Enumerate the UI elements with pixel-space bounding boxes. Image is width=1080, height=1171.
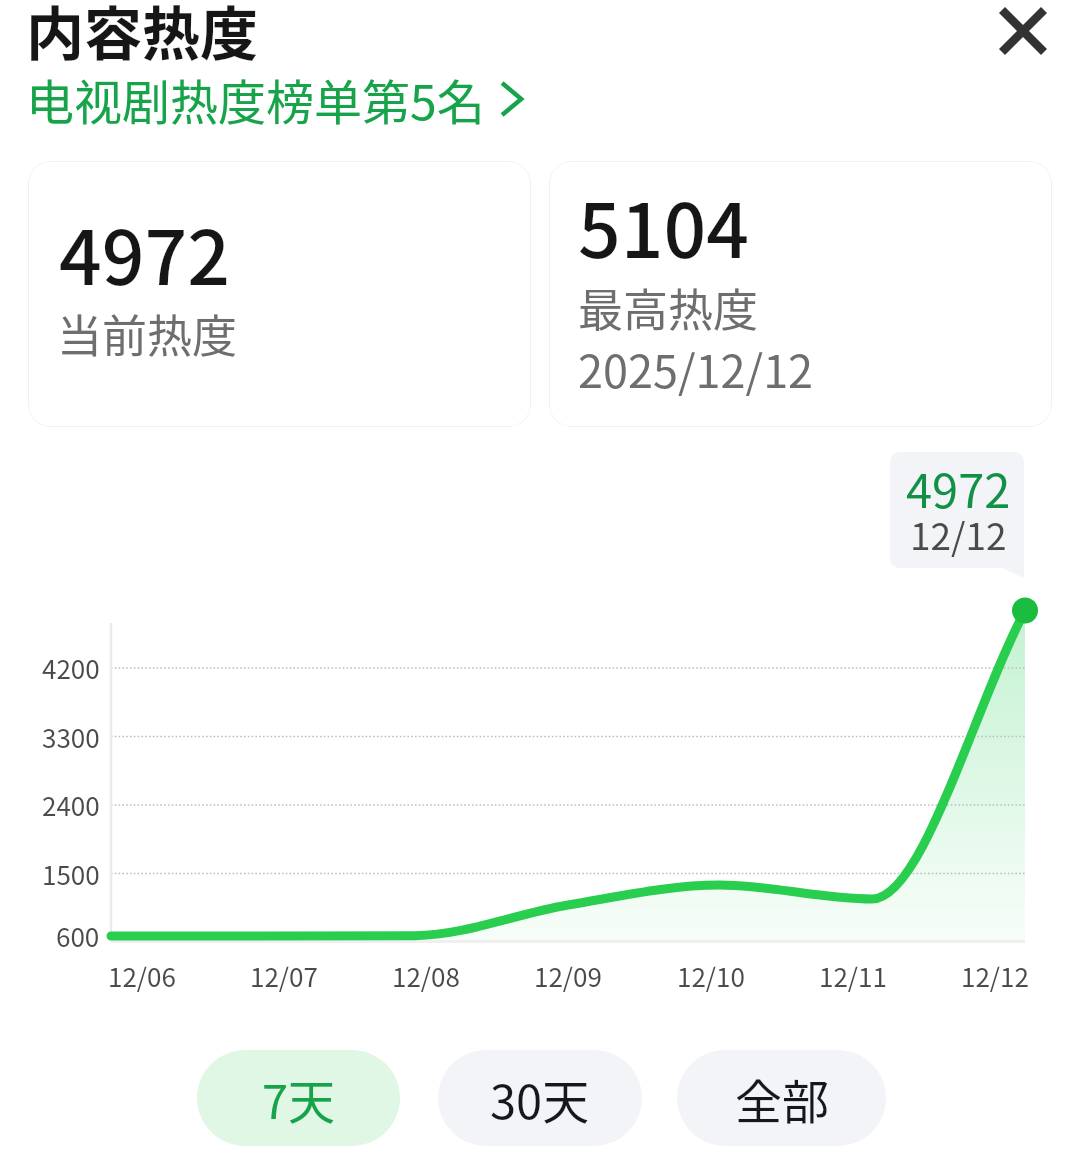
staticText: 12/12: [910, 507, 1007, 561]
button[interactable]: Close: [987, 0, 1059, 67]
button[interactable]: 全部: [677, 1050, 886, 1146]
staticText: 4972: [906, 453, 1011, 521]
staticText: 7天: [262, 1064, 336, 1132]
button[interactable]: 30天: [438, 1050, 642, 1146]
staticText: 12/07: [250, 957, 318, 993]
staticText: 内容热度: [26, 0, 259, 72]
staticText: 12/11: [819, 957, 887, 993]
staticText: 30天: [490, 1064, 590, 1132]
staticText: 全部: [735, 1064, 829, 1132]
staticText: 电视剧热度榜单第5名: [26, 64, 485, 134]
staticText: 12/08: [392, 957, 460, 993]
button[interactable]: 电视剧热度榜单第5名: [26, 64, 523, 134]
staticText: 4972: [59, 198, 231, 307]
staticText: 2025/12/12: [578, 336, 814, 401]
staticText: 当前热度: [57, 301, 238, 366]
staticText: 12/10: [677, 957, 745, 993]
staticText: 2400: [42, 786, 100, 824]
staticText: 12/06: [108, 957, 176, 993]
staticText: 4200: [42, 649, 100, 687]
staticText: 600: [56, 917, 100, 955]
button[interactable]: [28, 161, 531, 427]
button[interactable]: [549, 161, 1052, 427]
staticText: 3300: [42, 718, 100, 756]
button[interactable]: 7天: [197, 1050, 400, 1146]
staticText: 5104: [578, 171, 750, 280]
staticText: 12/12: [961, 957, 1029, 993]
staticText: 12/09: [534, 957, 602, 993]
staticText: 1500: [42, 855, 100, 893]
staticText: 最高热度: [578, 275, 759, 340]
